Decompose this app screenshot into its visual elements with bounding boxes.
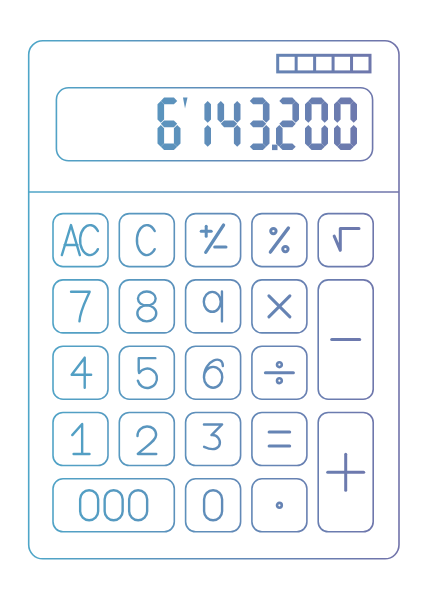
button[interactable]: Calculator illustration xyxy=(0,0,429,600)
